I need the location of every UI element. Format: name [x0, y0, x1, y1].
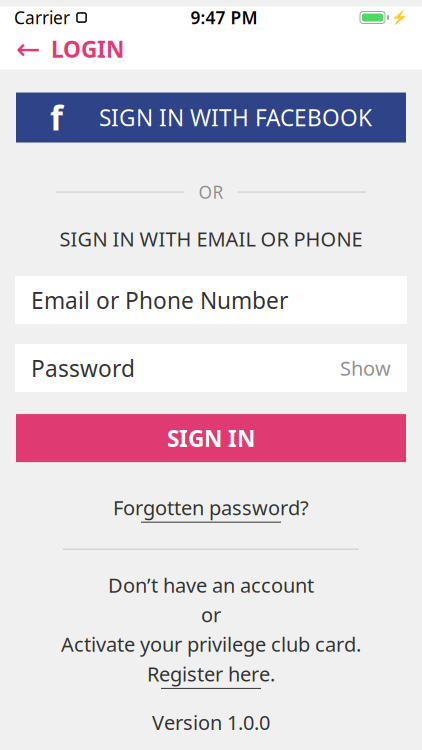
staticText: Register here.: [147, 660, 275, 687]
staticText: OR: [198, 180, 223, 203]
staticText: SIGN IN WITH EMAIL OR PHONE: [59, 226, 362, 252]
staticText: ←: [16, 32, 41, 66]
staticText: Show: [340, 355, 391, 381]
staticText: Don’t have an account: [108, 572, 314, 598]
staticText: Carrier: [14, 6, 70, 29]
staticText: [70, 6, 75, 29]
button[interactable]: Register here.: [147, 660, 275, 689]
staticText: SIGN IN WITH FACEBOOK: [99, 102, 372, 133]
button[interactable]: SIGN IN: [16, 414, 406, 462]
button[interactable]: Show: [340, 355, 391, 381]
staticText: f: [50, 95, 63, 140]
staticText: Activate your privilege club card.: [61, 631, 361, 657]
staticText: Forgotten password?: [113, 494, 309, 521]
button[interactable]: f: [16, 92, 406, 142]
staticText: Email or Phone Number: [31, 285, 288, 315]
staticText: LOGIN: [51, 34, 124, 64]
button[interactable]: Forgotten password?: [113, 494, 309, 523]
staticText: 9:47 PM: [190, 6, 257, 29]
staticText: or: [201, 601, 221, 628]
staticText: SIGN IN: [167, 423, 255, 453]
staticText: ⚡: [391, 10, 408, 25]
button[interactable]: ←: [0, 28, 422, 69]
staticText: Version 1.0.0: [152, 709, 270, 735]
staticText: Password: [31, 353, 135, 383]
